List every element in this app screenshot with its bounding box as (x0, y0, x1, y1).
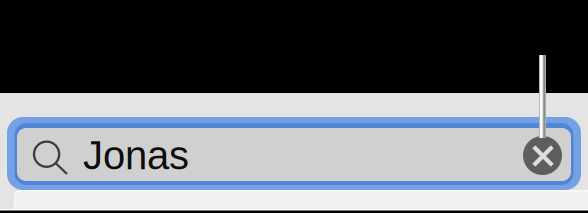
button[interactable]: Clear search (523, 136, 563, 176)
staticText: Jonas (83, 133, 189, 178)
